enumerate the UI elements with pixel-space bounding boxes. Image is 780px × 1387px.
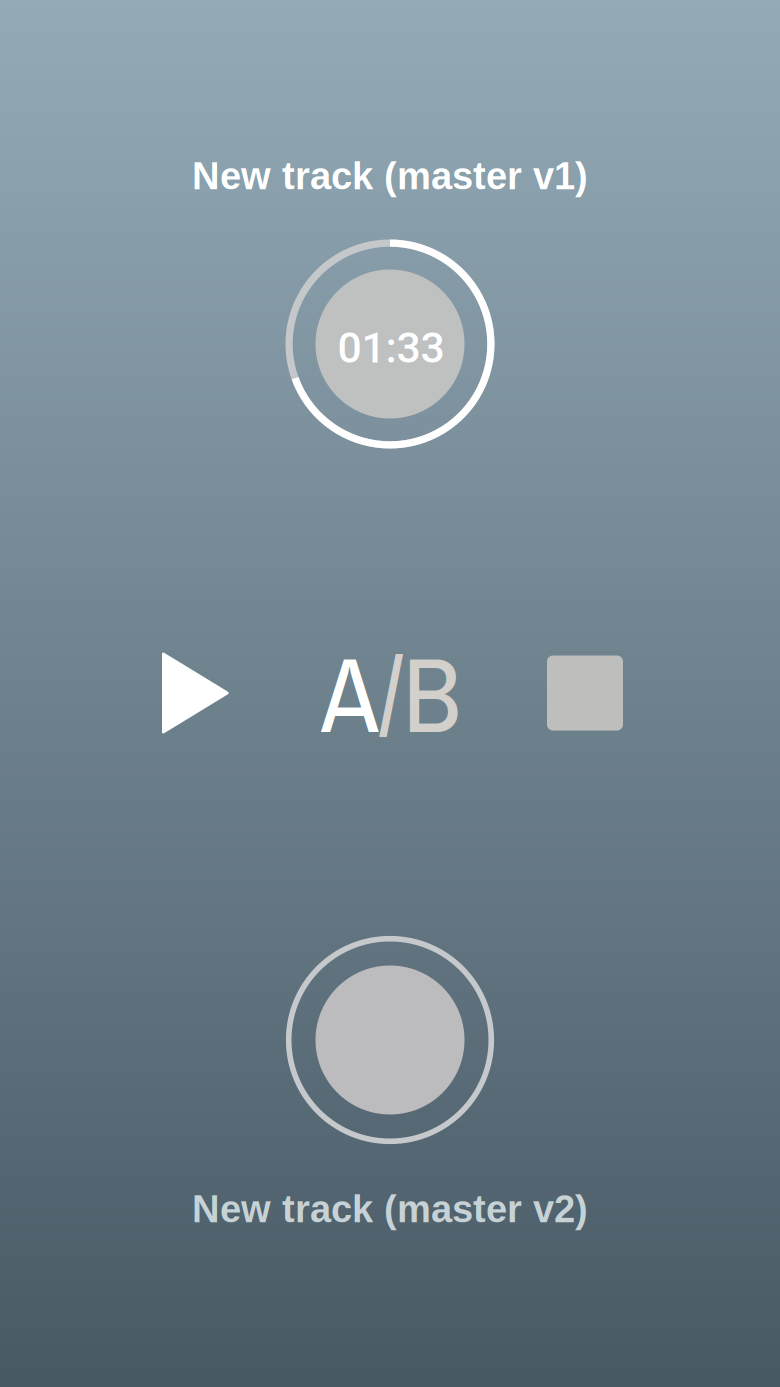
button[interactable]: A slash B compare — [321, 623, 461, 765]
button[interactable]: Play — [162, 651, 230, 734]
staticText: New track (master v2) — [192, 1188, 588, 1230]
staticText: New track (master v1) — [192, 155, 588, 197]
button[interactable]: Stop — [547, 655, 623, 730]
button[interactable]: Record — [285, 935, 495, 1145]
staticText: 01:33 — [337, 323, 444, 373]
button[interactable]: Playback position, 01:33 — [285, 239, 495, 449]
staticText: A — [321, 623, 379, 765]
staticText: /B — [379, 623, 461, 765]
